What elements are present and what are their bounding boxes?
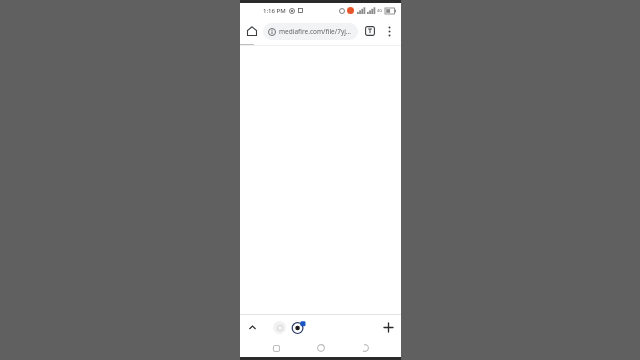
- button[interactable]: Home: [312, 339, 330, 357]
- button[interactable]: New tab: [380, 319, 396, 335]
- button[interactable]: Recent apps: [267, 339, 285, 357]
- other: Pointer: [290, 318, 308, 336]
- staticText: mediafire.com/file/7yjmyj: [279, 27, 353, 36]
- button[interactable]: Switch tabs: [361, 22, 379, 40]
- button[interactable]: Button: [273, 321, 286, 334]
- staticText: 1:16 PM: [263, 7, 286, 15]
- staticText: 4G: [377, 8, 383, 13]
- button[interactable]: mediafire.com/file/7yjmyj: [263, 23, 358, 40]
- button[interactable]: Back: [356, 339, 374, 357]
- button[interactable]: More options: [380, 22, 398, 40]
- button[interactable]: Expand: [245, 320, 259, 334]
- button[interactable]: Home: [243, 22, 261, 40]
